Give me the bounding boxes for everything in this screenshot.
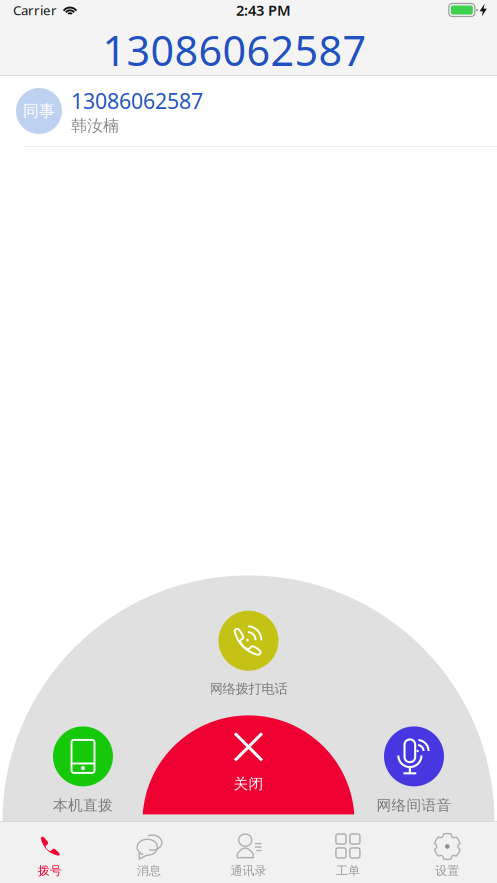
staticText: Carrier <box>13 1 57 19</box>
button[interactable]: 关闭 <box>233 732 263 793</box>
button[interactable]: 设置 <box>398 822 497 883</box>
staticText: 网络间语音 <box>376 796 451 814</box>
button[interactable]: 本机直拨 <box>53 726 113 814</box>
staticText: 2:43 PM <box>236 0 291 20</box>
button[interactable]: 同事 <box>0 76 497 147</box>
button[interactable]: 网络拨打电话 <box>209 611 287 697</box>
staticText: 网络拨打电话 <box>209 681 287 697</box>
staticText: 关闭 <box>233 775 263 793</box>
staticText: 韩汝楠 <box>71 116 119 135</box>
button[interactable]: 拨号 <box>0 822 99 883</box>
staticText: 13086062587 <box>102 23 366 77</box>
staticText: 通讯录 <box>230 863 266 878</box>
staticText: 13086062587 <box>71 86 203 115</box>
button[interactable]: 工单 <box>298 822 398 883</box>
staticText: 拨号 <box>38 863 62 878</box>
staticText: 设置 <box>435 863 459 878</box>
staticText: 工单 <box>336 863 360 878</box>
staticText: 本机直拨 <box>53 796 113 814</box>
button[interactable]: 网络间语音 <box>376 726 451 814</box>
staticText: 消息 <box>137 863 161 878</box>
staticText: 同事 <box>23 101 55 121</box>
button[interactable]: 通讯录 <box>199 822 298 883</box>
button[interactable]: 消息 <box>99 822 199 883</box>
